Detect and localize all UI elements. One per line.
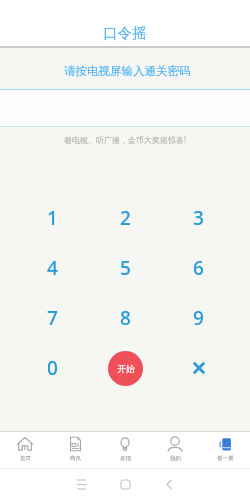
staticText: 5: [120, 255, 131, 281]
button[interactable]: Home: [108, 469, 142, 500]
staticText: 3: [193, 205, 204, 231]
staticText: 2: [120, 205, 131, 231]
button[interactable]: 2: [89, 193, 162, 243]
staticText: 我的: [170, 455, 181, 462]
staticText: 开始: [117, 363, 135, 374]
staticText: 商讯: [70, 455, 81, 462]
button[interactable]: 1: [15, 193, 89, 243]
button[interactable]: Recents: [64, 469, 98, 500]
staticText: 首页: [20, 455, 31, 462]
staticText: 8: [120, 305, 131, 331]
staticText: 发现: [120, 455, 131, 462]
staticText: 看电视、听广播，金币大奖摇惊喜!: [64, 134, 187, 145]
staticText: 7: [47, 305, 58, 331]
button[interactable]: Delete: [162, 343, 235, 393]
button[interactable]: 4: [15, 243, 89, 293]
button[interactable]: 开始: [108, 351, 143, 386]
button[interactable]: 首页: [0, 432, 50, 468]
staticText: 9: [193, 305, 204, 331]
staticText: 6: [193, 255, 204, 281]
button[interactable]: 5: [89, 243, 162, 293]
button[interactable]: 发现: [100, 432, 150, 468]
staticText: 口令摇: [103, 24, 147, 42]
staticText: 摇一摇: [217, 455, 234, 462]
staticText: 0: [47, 355, 58, 381]
button[interactable]: 6: [162, 243, 235, 293]
button[interactable]: 9: [162, 293, 235, 343]
staticText: 请按电视屏输入通关密码: [64, 64, 191, 78]
button[interactable]: Back: [152, 469, 186, 500]
button[interactable]: 8: [89, 293, 162, 343]
button[interactable]: 我的: [150, 432, 200, 468]
button[interactable]: 3: [162, 193, 235, 243]
button[interactable]: 0: [15, 343, 89, 393]
button[interactable]: 摇一摇: [200, 432, 250, 468]
button[interactable]: 7: [15, 293, 89, 343]
button[interactable]: 商讯: [50, 432, 100, 468]
staticText: 1: [47, 205, 58, 231]
staticText: 4: [47, 255, 58, 281]
